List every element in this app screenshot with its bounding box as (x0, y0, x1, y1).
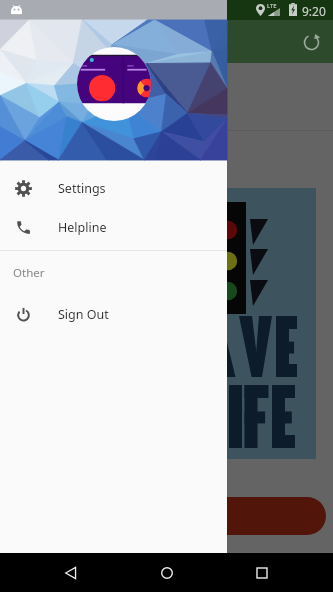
staticText: LTE (267, 2, 277, 10)
button[interactable] (17, 188, 316, 459)
button[interactable]: Helpline (0, 208, 227, 247)
button[interactable]: Recent apps (247, 558, 277, 588)
button[interactable]: Back (56, 558, 86, 588)
button[interactable]: Sign Out (0, 295, 227, 334)
staticText: Other (13, 265, 45, 281)
staticText: Settings (58, 180, 106, 197)
button[interactable]: Settings (0, 169, 227, 208)
staticText: Sign Out (58, 306, 109, 323)
staticText: 9:20 (302, 3, 326, 19)
button[interactable] (7, 497, 326, 535)
button[interactable]: Refresh (297, 28, 325, 56)
button[interactable]: Home (152, 558, 182, 588)
staticText: Helpline (58, 219, 107, 236)
